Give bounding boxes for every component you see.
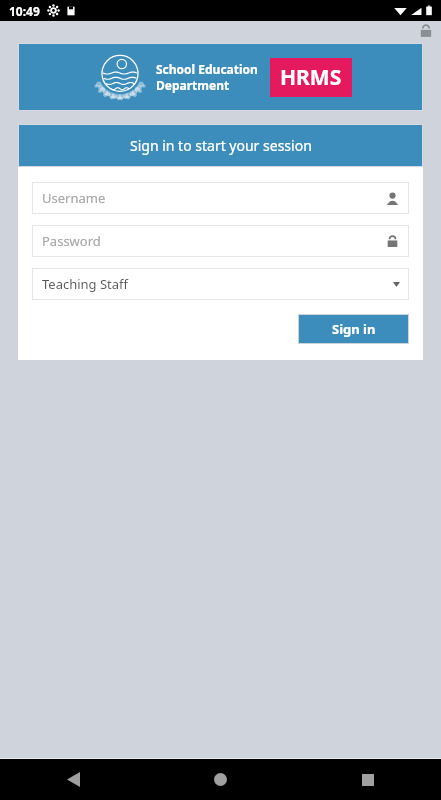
button[interactable]: Teaching Staff: [32, 268, 409, 300]
staticText: Department: [156, 77, 230, 93]
button[interactable]: Sign in: [299, 315, 408, 343]
staticText: Sign in: [332, 320, 376, 338]
button[interactable]: Home: [147, 759, 294, 800]
button[interactable]: Recent apps: [294, 759, 441, 800]
other: Secure connection: [419, 24, 433, 38]
staticText: 10:49: [9, 3, 40, 19]
staticText: Password: [42, 232, 101, 250]
staticText: Sign in to start your session: [130, 136, 312, 155]
staticText: Teaching Staff: [42, 275, 129, 293]
button[interactable]: Password: [32, 225, 409, 257]
staticText: HRMS: [280, 63, 342, 92]
staticText: School Education: [156, 61, 258, 77]
staticText: Username: [42, 189, 106, 207]
button[interactable]: Username: [32, 182, 409, 214]
button[interactable]: Back: [0, 759, 147, 800]
